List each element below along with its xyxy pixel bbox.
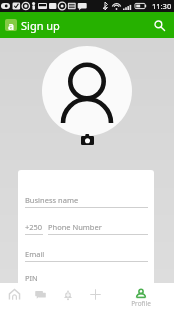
button[interactable]: Home [1,283,27,310]
button[interactable]: Business name [18,170,154,208]
staticText: Phone Number [48,222,102,232]
button[interactable]: Notifications [55,283,81,310]
staticText: Sign up [21,18,60,33]
staticText: PIN [25,273,38,283]
button[interactable]: Chat [27,283,53,310]
staticText: 11:30 [152,1,172,11]
button[interactable]: Email [18,170,154,262]
staticText: +250 [25,222,43,232]
staticText: Business name [25,195,79,205]
staticText: a [8,19,14,31]
staticText: Email [25,249,45,259]
button[interactable]: +250 [18,170,154,235]
button[interactable]: App icon [5,19,17,31]
button[interactable]: PIN [18,170,154,286]
button[interactable]: Search [149,15,169,35]
button[interactable]: Profile [124,283,158,310]
button[interactable]: Change photo [78,132,96,146]
button[interactable]: Add [82,283,108,310]
staticText: Profile [131,299,151,308]
